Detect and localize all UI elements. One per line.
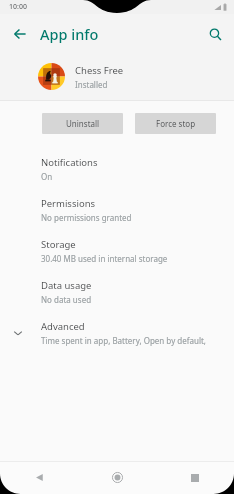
button[interactable]: Back [0,461,78,494]
staticText: No permissions granted [41,212,132,223]
staticText: No data used [41,294,92,305]
button[interactable]: Storage [0,230,234,271]
staticText: Installed [75,79,108,90]
staticText: Data usage [41,279,92,292]
staticText: On [41,171,53,182]
button[interactable]: Advanced [0,312,234,353]
staticText: Force stop [156,118,196,129]
staticText: Uninstall [66,118,100,129]
button[interactable]: Permissions [0,189,234,230]
staticText: Advanced [41,320,85,333]
staticText: 30.40 MB used in internal storage [41,253,168,264]
button[interactable]: Search [202,21,228,47]
button[interactable]: Notifications [0,148,234,189]
button[interactable]: Force stop [135,113,216,134]
button[interactable]: Recent apps [156,461,234,494]
button[interactable]: Data usage [0,271,234,312]
staticText: App info [40,24,99,44]
staticText: Chess Free [75,64,124,77]
staticText: Time spent in app, Battery, Open by defa… [41,335,224,346]
staticText: 10:00 [9,2,27,12]
button[interactable]: Uninstall [42,113,123,134]
button[interactable]: Back [7,21,33,47]
staticText: Permissions [41,197,96,210]
button[interactable]: Home [78,461,156,494]
staticText: Storage [41,238,76,251]
staticText: Notifications [41,156,98,169]
button[interactable]: Chess Free [0,53,234,100]
